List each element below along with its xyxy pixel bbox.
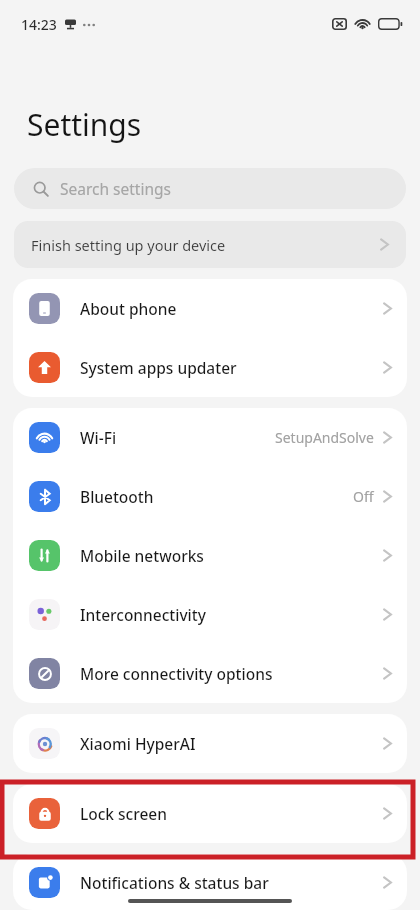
- staticText: Off: [353, 487, 374, 506]
- button[interactable]: Finish setting up your device: [14, 221, 406, 268]
- staticText: Interconnectivity: [80, 604, 206, 625]
- staticText: SetupAndSolve: [275, 428, 374, 447]
- button[interactable]: Interconnectivity: [13, 585, 407, 644]
- staticText: 14:23: [21, 15, 57, 34]
- button[interactable]: More connectivity options: [13, 644, 407, 703]
- staticText: Xiaomi HyperAI: [80, 733, 196, 754]
- staticText: Settings: [27, 104, 142, 145]
- button[interactable]: Mobile networks: [13, 526, 407, 585]
- staticText: Search settings: [60, 178, 171, 199]
- button[interactable]: Wi-Fi: [13, 408, 407, 467]
- staticText: About phone: [80, 298, 177, 319]
- staticText: Mobile networks: [80, 545, 204, 566]
- button[interactable]: About phone: [13, 279, 407, 338]
- staticText: Bluetooth: [80, 486, 154, 507]
- staticText: Lock screen: [80, 803, 167, 824]
- button[interactable]: Bluetooth: [13, 467, 407, 526]
- staticText: System apps updater: [80, 357, 237, 378]
- staticText: Wi-Fi: [80, 427, 117, 448]
- staticText: Finish setting up your device: [31, 235, 226, 255]
- button[interactable]: Notifications & status bar: [13, 854, 407, 910]
- staticText: Notifications & status bar: [80, 872, 269, 893]
- staticText: More connectivity options: [80, 663, 273, 684]
- button[interactable]: Lock screen: [13, 784, 407, 843]
- button[interactable]: Search settings: [14, 168, 406, 209]
- button[interactable]: System apps updater: [13, 338, 407, 397]
- button[interactable]: Xiaomi HyperAI: [13, 714, 407, 773]
